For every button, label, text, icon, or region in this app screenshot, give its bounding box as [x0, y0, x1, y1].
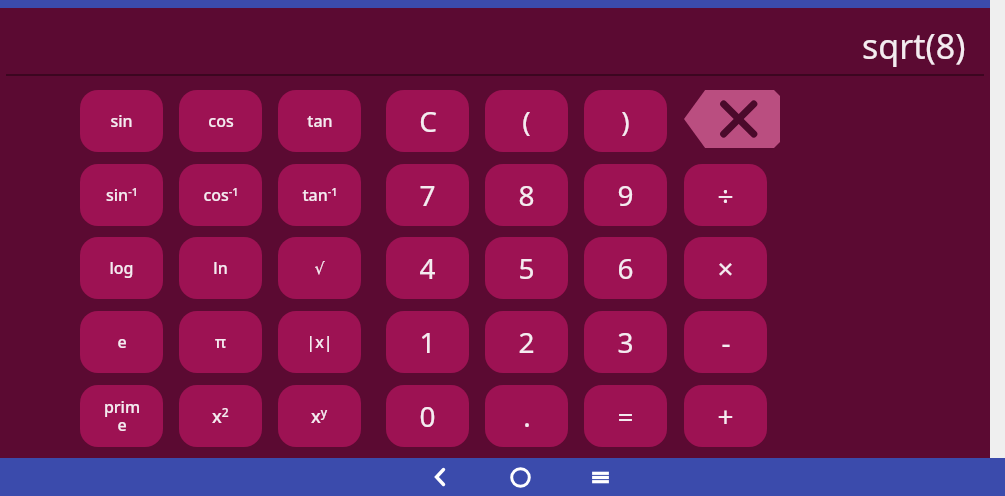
button[interactable]: Recent apps — [570, 458, 630, 496]
button[interactable]: 4 — [386, 237, 469, 299]
staticText: tan-1 — [302, 184, 338, 206]
button[interactable]: Back — [410, 458, 470, 496]
button[interactable]: 1 — [386, 311, 469, 373]
staticText: - — [721, 323, 731, 361]
button[interactable]: ) — [584, 90, 667, 152]
button[interactable]: xy — [278, 385, 361, 447]
button[interactable]: sin — [80, 90, 163, 152]
button[interactable]: 9 — [584, 164, 667, 226]
button[interactable]: C — [386, 90, 469, 152]
button[interactable]: |x| — [278, 311, 361, 373]
staticText: . — [523, 397, 531, 435]
staticText: sin — [110, 110, 133, 132]
staticText: x2 — [212, 404, 229, 429]
staticText: cos — [208, 110, 234, 132]
staticText: xy — [311, 404, 328, 429]
button[interactable]: cos-1 — [179, 164, 262, 226]
button[interactable]: Backspace — [684, 90, 780, 148]
button[interactable]: ( — [485, 90, 568, 152]
button[interactable]: tan-1 — [278, 164, 361, 226]
button[interactable]: + — [684, 385, 767, 447]
staticText: 6 — [617, 249, 634, 287]
staticText: prime — [100, 396, 144, 436]
staticText: ln — [213, 257, 228, 279]
button[interactable]: 0 — [386, 385, 469, 447]
staticText: 0 — [419, 397, 436, 435]
button[interactable]: sin-1 — [80, 164, 163, 226]
staticText: 8 — [518, 176, 535, 214]
staticText: ( — [522, 102, 531, 140]
staticText: + — [717, 397, 734, 435]
button[interactable]: π — [179, 311, 262, 373]
staticText: × — [717, 249, 734, 287]
button[interactable]: tan — [278, 90, 361, 152]
button[interactable]: √ — [278, 237, 361, 299]
staticText: = — [617, 397, 634, 435]
button[interactable]: Home — [490, 458, 550, 496]
button[interactable]: = — [584, 385, 667, 447]
button[interactable]: x2 — [179, 385, 262, 447]
staticText: π — [215, 331, 226, 353]
button[interactable]: - — [684, 311, 767, 373]
staticText: ) — [621, 102, 630, 140]
button[interactable]: 3 — [584, 311, 667, 373]
staticText: sqrt(8) — [862, 23, 966, 69]
button[interactable]: log — [80, 237, 163, 299]
button[interactable]: 5 — [485, 237, 568, 299]
staticText: √ — [314, 259, 325, 278]
button[interactable]: e — [80, 311, 163, 373]
button[interactable]: × — [684, 237, 767, 299]
staticText: 3 — [617, 323, 634, 361]
button[interactable]: cos — [179, 90, 262, 152]
button[interactable]: . — [485, 385, 568, 447]
staticText: 7 — [419, 176, 436, 214]
staticText: 9 — [617, 176, 634, 214]
button[interactable]: 6 — [584, 237, 667, 299]
button[interactable]: ln — [179, 237, 262, 299]
staticText: tan — [307, 110, 333, 132]
staticText: ÷ — [717, 176, 734, 214]
staticText: sin-1 — [106, 184, 138, 206]
staticText: 2 — [518, 323, 535, 361]
staticText: 4 — [419, 249, 436, 287]
button[interactable]: 2 — [485, 311, 568, 373]
staticText: 5 — [518, 249, 535, 287]
button[interactable]: ÷ — [684, 164, 767, 226]
staticText: 1 — [419, 323, 436, 361]
staticText: e — [117, 331, 127, 353]
staticText: C — [419, 102, 437, 140]
button[interactable]: 8 — [485, 164, 568, 226]
staticText: |x| — [306, 331, 333, 353]
button[interactable]: 7 — [386, 164, 469, 226]
button[interactable]: prime — [80, 385, 163, 447]
staticText: log — [109, 257, 134, 279]
staticText: cos-1 — [203, 184, 239, 206]
